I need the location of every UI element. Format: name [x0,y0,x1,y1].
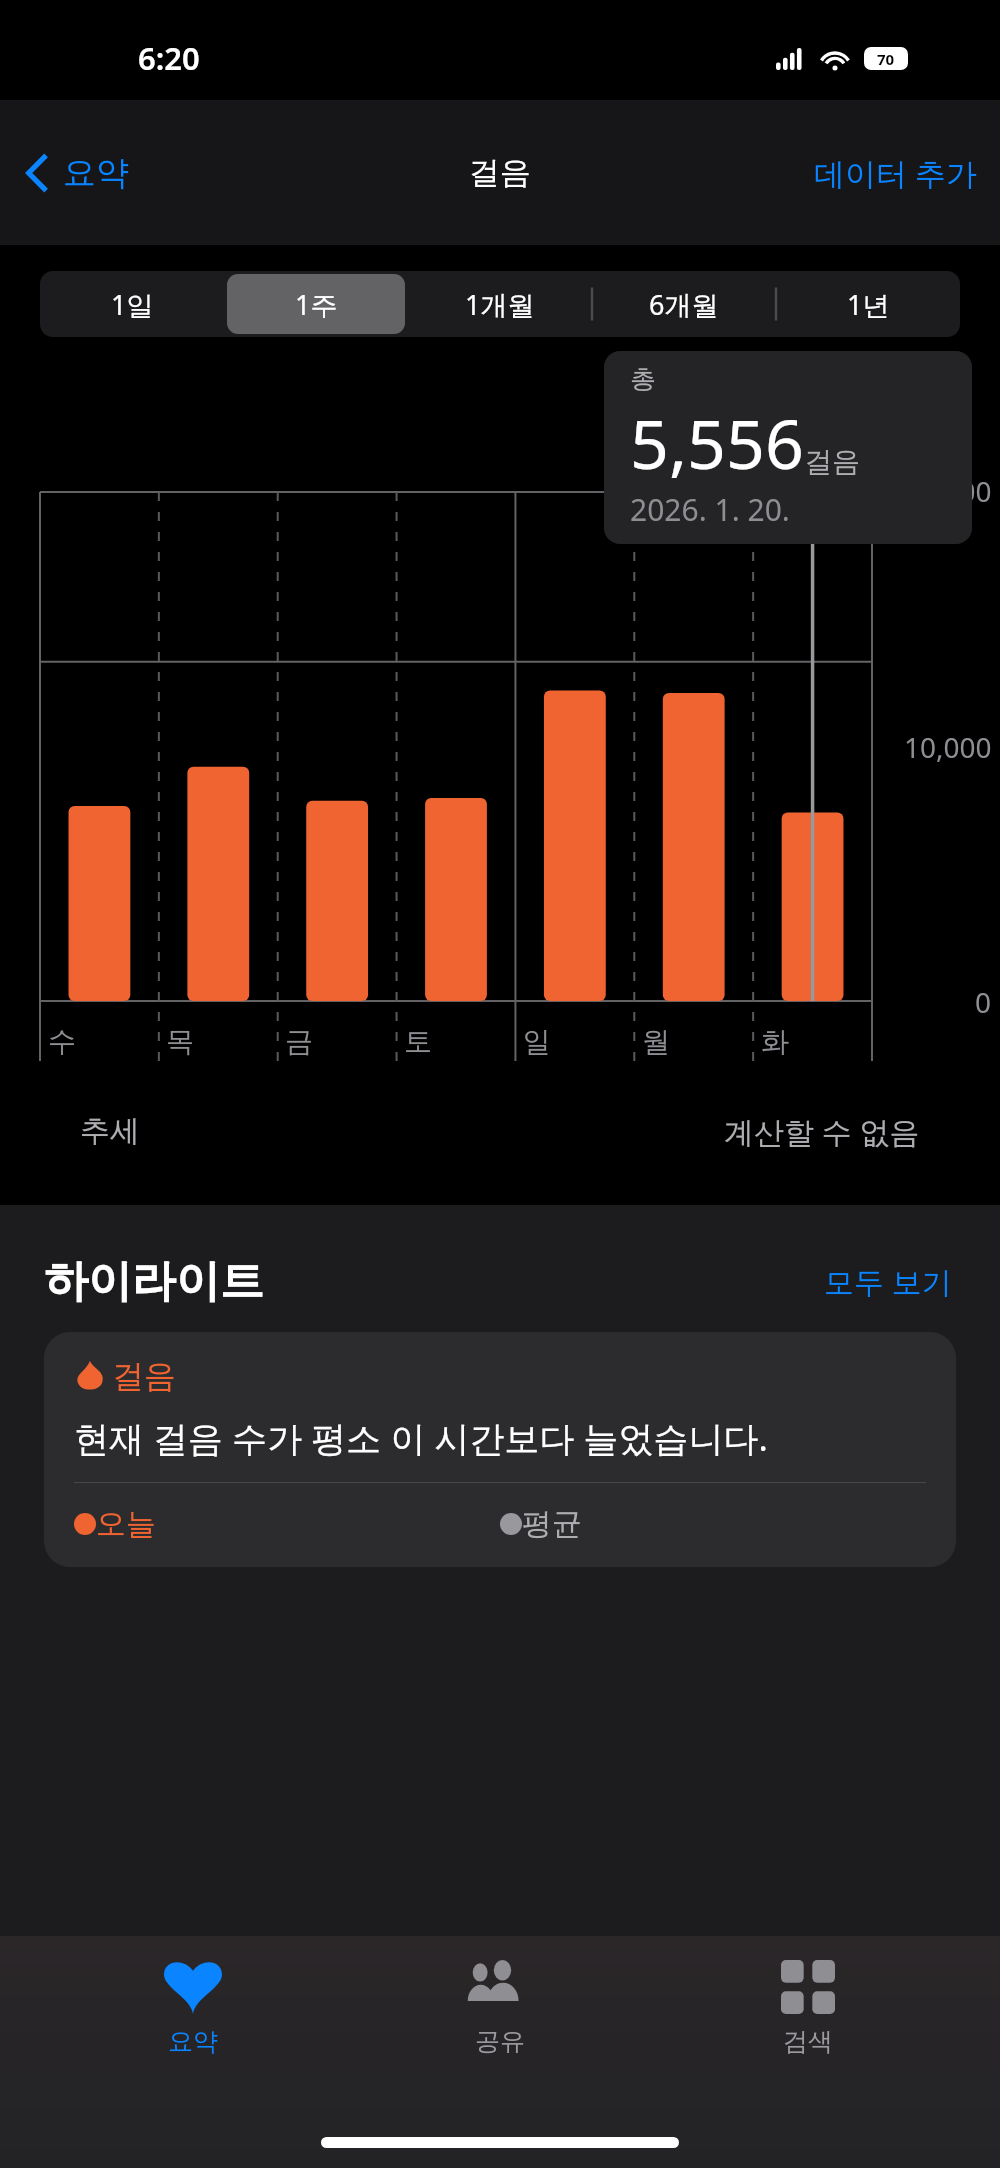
staticText: 데이터 추가 [814,152,978,194]
other: 공유 [469,1960,531,2014]
staticText: 일 [523,1024,551,1059]
staticText: 금 [285,1024,313,1059]
button[interactable]: 모두 보기 [820,1253,956,1310]
button[interactable]: 공유 [385,1956,615,2061]
staticText: 5,556 [630,396,804,489]
staticText: 계산할 수 없음 [724,1111,920,1152]
staticText: 화 [761,1024,789,1059]
staticText: 월 [642,1024,670,1059]
other: 검색 [781,1960,835,2014]
button[interactable]: 1일 [43,274,221,334]
staticText: 70 [877,49,895,69]
staticText: 걸음 [112,1356,176,1396]
staticText: 6개월 [649,286,719,323]
staticText: 6:20 [138,37,200,79]
button[interactable]: 요약 [18,142,135,204]
staticText: 1주 [295,286,338,323]
staticText: 하이라이트 [44,1254,264,1309]
staticText: 걸음 [804,444,860,479]
staticText: 오늘 [96,1505,156,1543]
button[interactable]: 1년 [779,274,957,334]
staticText: 총 [630,363,656,396]
staticText: 10,000 [904,728,992,766]
button[interactable]: 걸음 [44,1332,956,1567]
staticText: 토 [404,1024,432,1059]
staticText: 현재 걸음 수가 평소 이 시간보다 늘었습니다. [74,1414,768,1462]
staticText: 1일 [111,286,154,323]
button[interactable]: 요약 [78,1956,308,2061]
staticText: 1년 [847,286,890,323]
button[interactable]: 검색 [693,1956,923,2061]
staticText: 검색 [783,2026,833,2057]
button[interactable]: 1주 [227,274,405,334]
staticText: 평균 [522,1505,582,1543]
staticText: 1개월 [465,286,535,323]
button[interactable]: 추세 [50,1081,950,1181]
staticText: 2026. 1. 20. [630,489,790,530]
staticText: 공유 [475,2026,525,2057]
button[interactable]: 1개월 [411,274,589,334]
button[interactable]: 6개월 [595,274,773,334]
staticText: 15,000 [904,472,992,510]
staticText: 요약 [168,2026,218,2057]
staticText: 추세 [80,1112,140,1150]
staticText: 모두 보기 [824,1261,952,1302]
staticText: 걸음 [469,153,531,192]
staticText: 수 [48,1024,76,1059]
staticText: 요약 [63,152,129,194]
staticText: 목 [166,1024,194,1059]
staticText: 0 [975,983,992,1021]
other: 요약 [164,1960,222,2014]
button[interactable]: 데이터 추가 [806,142,986,204]
